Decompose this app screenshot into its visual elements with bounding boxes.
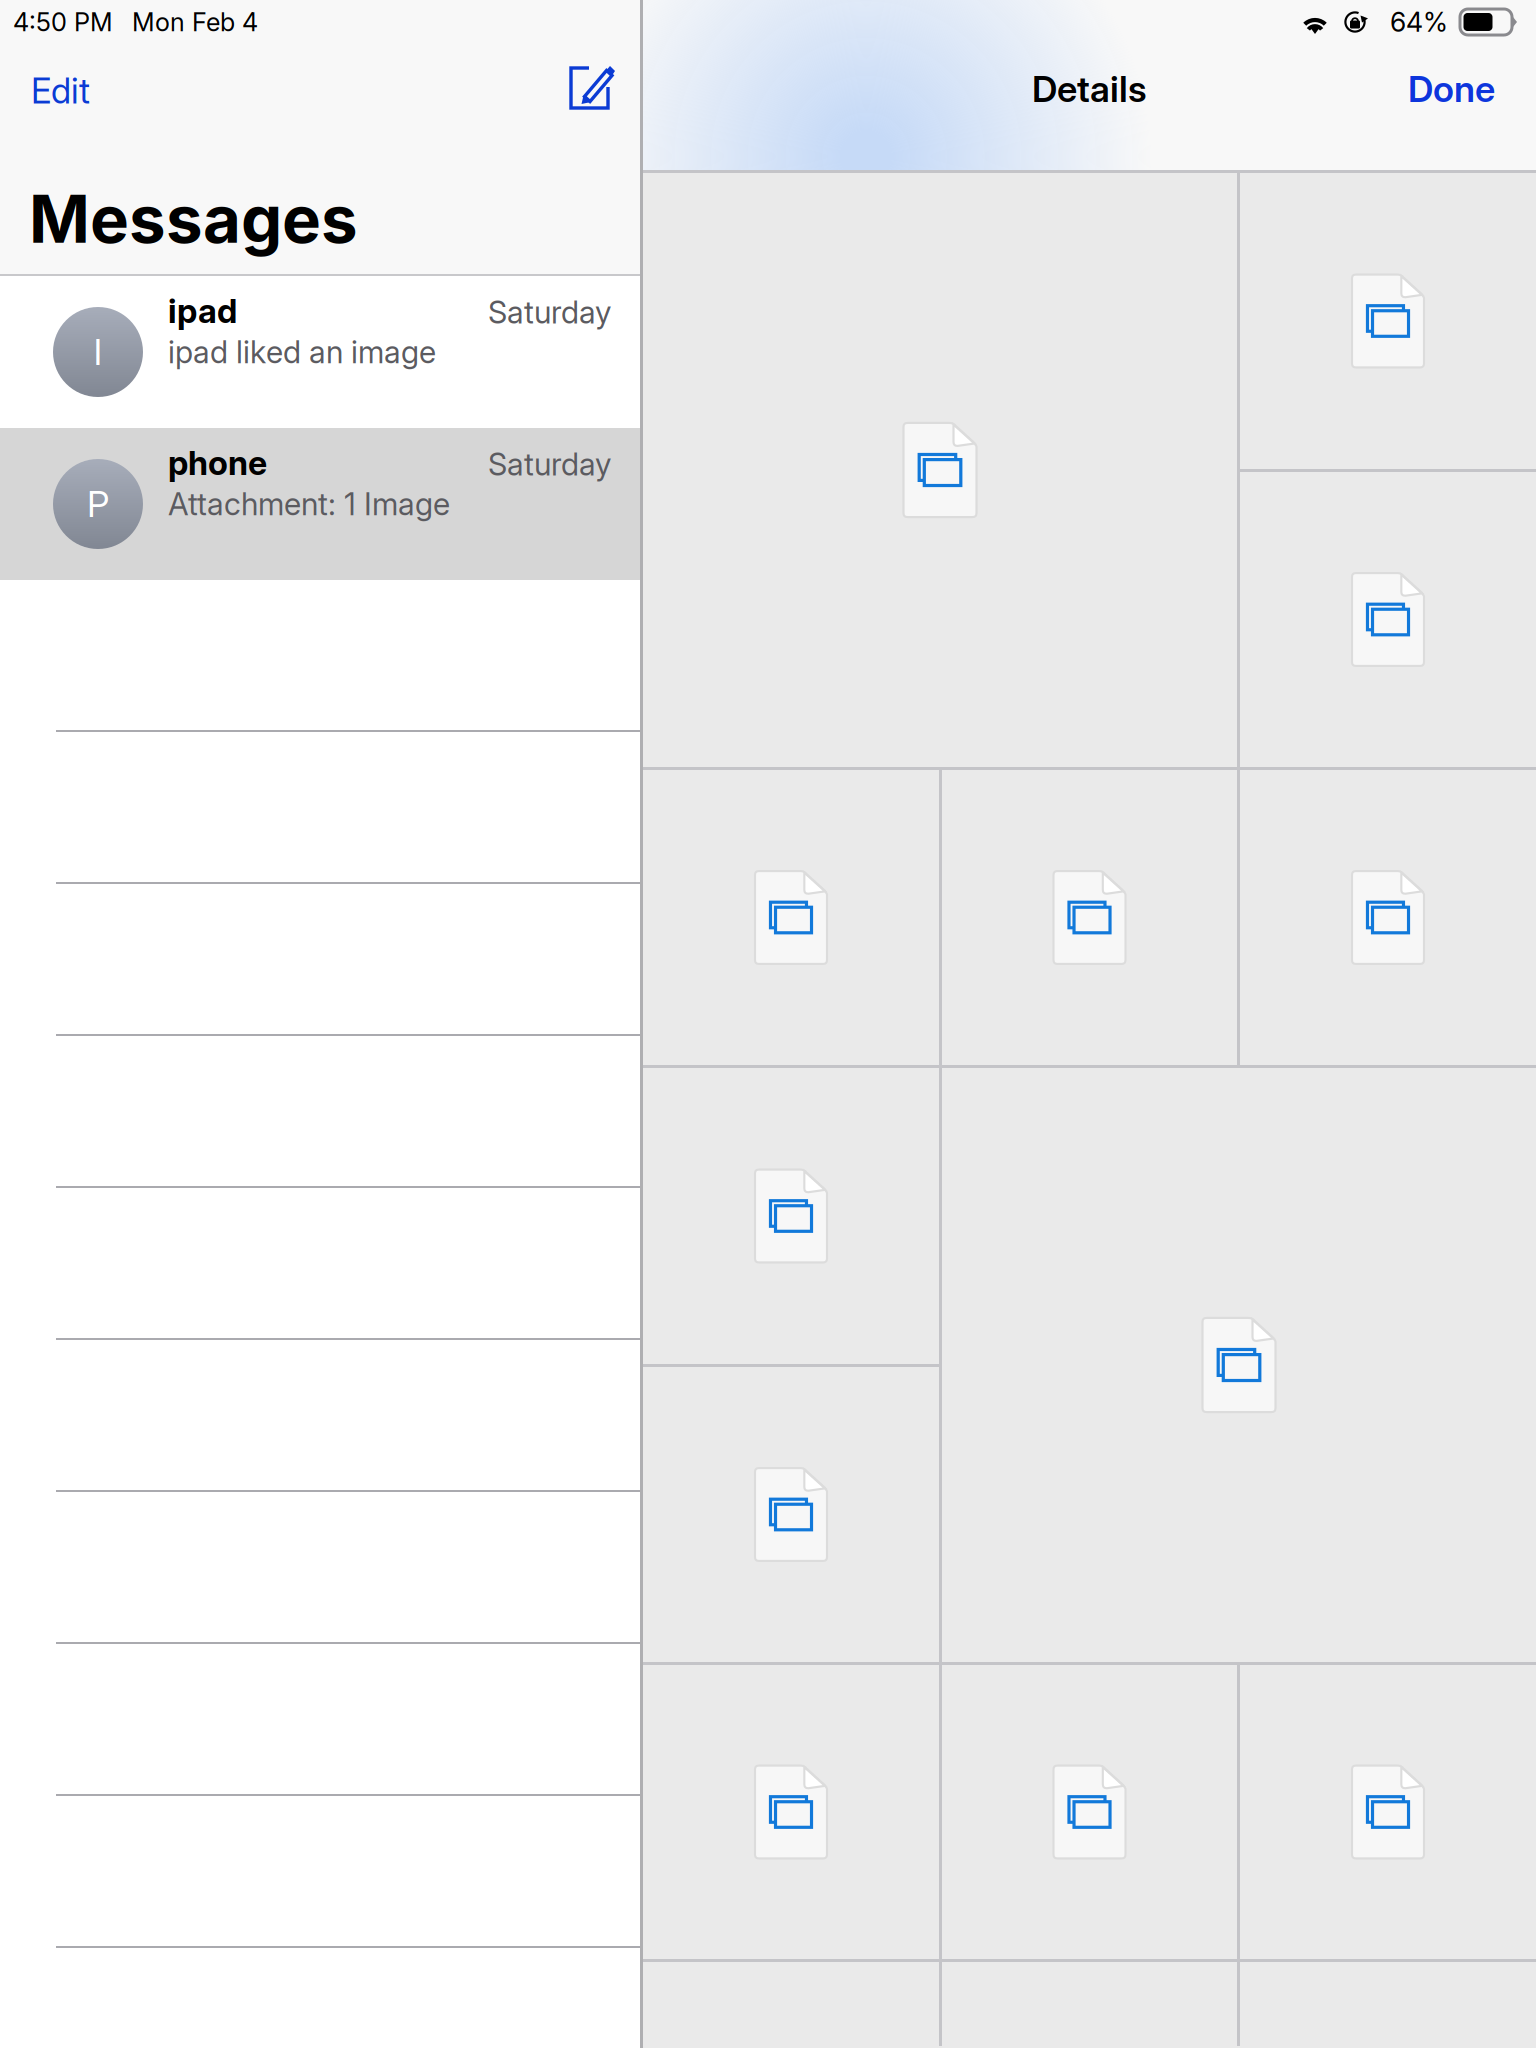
staticText: phone bbox=[168, 443, 267, 483]
button[interactable]: P bbox=[0, 428, 640, 580]
button[interactable]: Attachment bbox=[643, 1367, 939, 1662]
staticText: Done bbox=[1408, 67, 1495, 111]
button[interactable]: Attachment bbox=[1240, 1665, 1536, 1959]
button[interactable]: Attachment bbox=[942, 1068, 1536, 1662]
button[interactable]: Compose bbox=[556, 44, 628, 132]
staticText: Saturday bbox=[488, 446, 611, 483]
button[interactable]: Attachment bbox=[643, 1068, 939, 1364]
button[interactable]: Edit bbox=[0, 44, 131, 132]
staticText: Mon Feb 4 bbox=[132, 7, 258, 37]
button[interactable]: Attachment bbox=[1240, 770, 1536, 1065]
staticText: 4:50 PM bbox=[13, 7, 113, 37]
staticText: Edit bbox=[31, 70, 90, 112]
staticText: 64% bbox=[1390, 6, 1448, 38]
staticText: Details bbox=[1032, 67, 1147, 111]
staticText: Messages bbox=[29, 179, 358, 258]
staticText: ipad bbox=[168, 291, 237, 331]
staticText: Attachment: 1 Image bbox=[168, 485, 450, 522]
button[interactable]: Attachment bbox=[942, 1665, 1237, 1959]
staticText: Saturday bbox=[488, 294, 611, 331]
button[interactable]: Attachment bbox=[942, 770, 1237, 1065]
staticText: ipad liked an image bbox=[168, 333, 436, 370]
button[interactable]: Attachment bbox=[1240, 173, 1536, 469]
button[interactable]: Attachment bbox=[643, 770, 939, 1065]
button[interactable]: Attachment bbox=[643, 1665, 939, 1959]
button[interactable]: I bbox=[0, 276, 640, 428]
button[interactable]: Done bbox=[1408, 44, 1536, 170]
button[interactable]: Attachment bbox=[1240, 472, 1536, 767]
staticText: I bbox=[93, 330, 102, 374]
staticText: P bbox=[87, 482, 109, 526]
button[interactable]: Attachment bbox=[643, 173, 1237, 767]
